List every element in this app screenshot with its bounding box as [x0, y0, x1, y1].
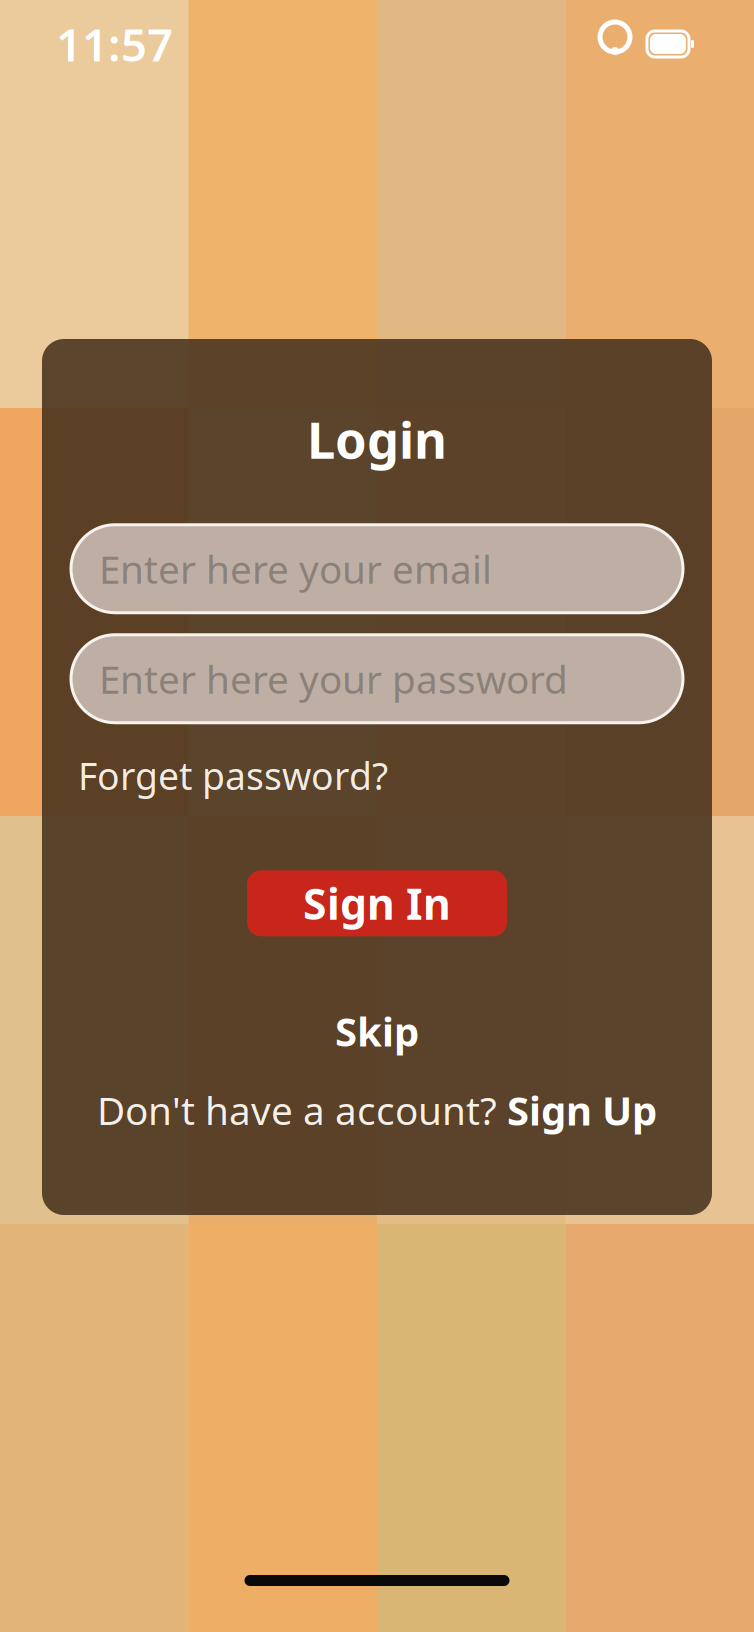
staticText: 11:57 [56, 14, 173, 74]
staticText: Enter here your password [99, 653, 568, 704]
staticText: Enter here your email [99, 543, 492, 594]
staticText: Login [307, 405, 447, 473]
staticText: Don't have a account? [97, 1084, 497, 1136]
staticText: Forget password? [78, 751, 388, 800]
staticText: Sign Up [507, 1083, 657, 1136]
button[interactable]: Skip [305, 994, 449, 1067]
button[interactable]: Don't have a account? [77, 1075, 677, 1144]
button[interactable]: Sign In [247, 870, 507, 936]
button[interactable]: Enter here your email [71, 525, 683, 613]
button[interactable]: Enter here your password [71, 635, 683, 723]
staticText: Skip [335, 1004, 419, 1057]
button[interactable]: Forget password? [42, 743, 712, 808]
staticText: Sign In [303, 875, 451, 932]
